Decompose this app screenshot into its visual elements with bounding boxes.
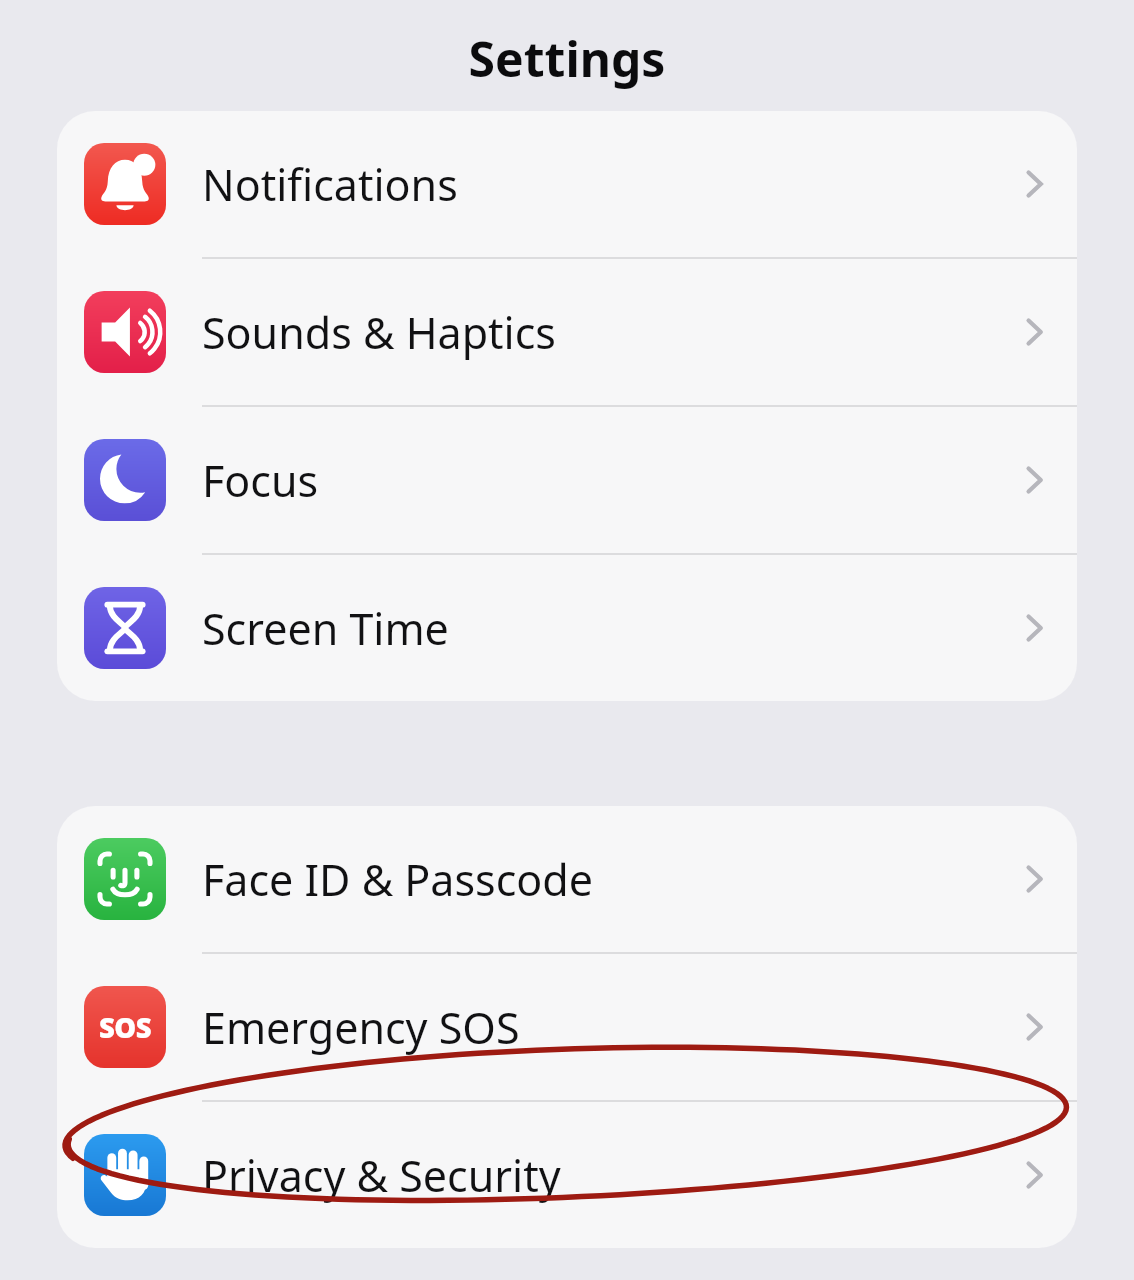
- staticText: Settings: [0, 26, 1134, 91]
- staticText: Notifications: [202, 155, 1017, 214]
- staticText: Privacy & Security: [202, 1146, 1017, 1205]
- staticText: Emergency SOS: [202, 998, 1017, 1057]
- button[interactable]: Screen Time: [57, 555, 1077, 701]
- staticText: Sounds & Haptics: [202, 303, 1017, 362]
- staticText: Face ID & Passcode: [202, 850, 1017, 909]
- button[interactable]: Focus: [57, 407, 1077, 553]
- button[interactable]: Sounds & Haptics: [57, 259, 1077, 405]
- staticText: Screen Time: [202, 599, 1017, 658]
- button[interactable]: Privacy & Security: [57, 1102, 1077, 1248]
- button[interactable]: Notifications: [57, 111, 1077, 257]
- staticText: Focus: [202, 451, 1017, 510]
- staticText: SOS: [99, 1009, 152, 1046]
- button[interactable]: SOS: [57, 954, 1077, 1100]
- button[interactable]: Face ID & Passcode: [57, 806, 1077, 952]
